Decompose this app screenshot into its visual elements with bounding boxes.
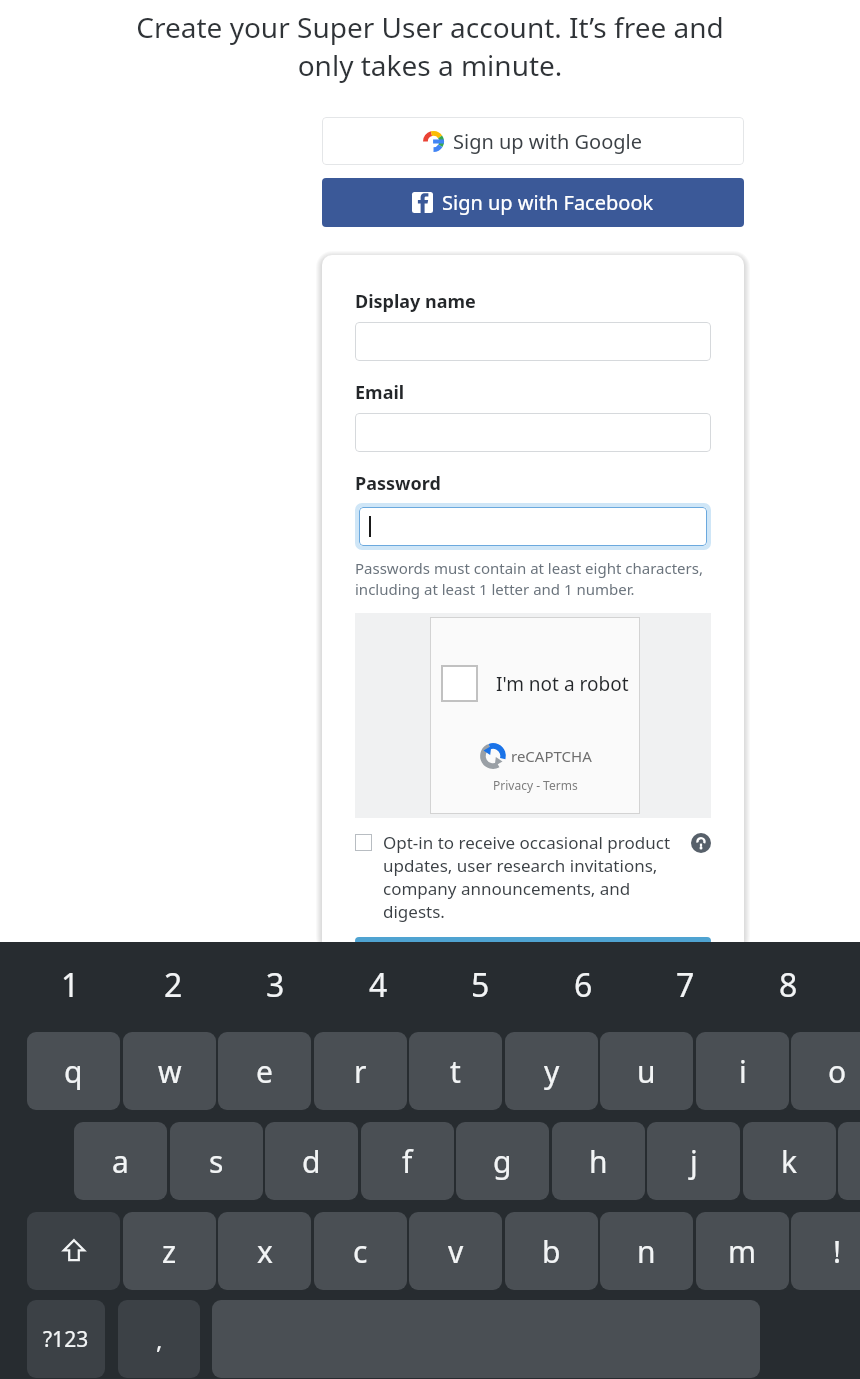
staticText: s [209, 1141, 224, 1182]
button[interactable]: j [647, 1122, 740, 1200]
staticText: v [448, 1231, 464, 1272]
button[interactable]: t [409, 1032, 502, 1110]
staticText: i [739, 1051, 747, 1092]
staticText: z [162, 1231, 177, 1272]
button[interactable]: v [409, 1212, 502, 1290]
button[interactable]: 5 [434, 954, 526, 1016]
staticText: h [589, 1141, 608, 1182]
button[interactable]: y [505, 1032, 598, 1110]
button[interactable]: u [600, 1032, 693, 1110]
button[interactable]: 1 [24, 954, 116, 1016]
staticText: ?123 [43, 1325, 89, 1354]
button[interactable]: 2 [127, 954, 219, 1016]
button[interactable]: g [456, 1122, 549, 1200]
button[interactable]: b [505, 1212, 598, 1290]
button[interactable]: Sign up with Google [322, 117, 744, 165]
staticText: Create your Super User account. It’s fre… [136, 8, 724, 84]
button[interactable]: k [743, 1122, 836, 1200]
staticText: 4 [369, 963, 388, 1007]
button[interactable]: I'm not a robot [430, 617, 640, 814]
staticText: d [302, 1141, 321, 1182]
staticText: Email [355, 380, 405, 405]
button[interactable]: n [600, 1212, 693, 1290]
staticText: I'm not a robot [496, 671, 629, 697]
staticText: 8 [779, 963, 798, 1007]
staticText: Sign up with Google [453, 128, 643, 155]
button[interactable]: z [123, 1212, 216, 1290]
staticText: x [257, 1231, 273, 1272]
button[interactable] [355, 413, 711, 452]
staticText: o [828, 1051, 847, 1092]
button[interactable]: d [265, 1122, 358, 1200]
staticText: , [156, 1323, 163, 1356]
button[interactable]: ! [791, 1212, 860, 1290]
button[interactable]: Sign up with Facebook [322, 178, 744, 227]
button[interactable]: 6 [537, 954, 629, 1016]
staticText: b [542, 1231, 561, 1272]
button[interactable]: f [361, 1122, 454, 1200]
staticText: e [256, 1051, 273, 1092]
staticText: m [728, 1231, 757, 1272]
button[interactable] [355, 834, 372, 851]
staticText: w [158, 1051, 182, 1092]
button[interactable]: , [118, 1300, 200, 1378]
button[interactable]: ?123 [27, 1300, 105, 1378]
button[interactable]: q [27, 1032, 120, 1110]
button[interactable]: Shift [27, 1212, 120, 1290]
staticText: Passwords must contain at least eight ch… [355, 558, 703, 600]
staticText: u [637, 1051, 656, 1092]
staticText: 2 [164, 963, 183, 1007]
button[interactable]: i [696, 1032, 789, 1110]
staticText: y [544, 1051, 560, 1092]
button[interactable]: a [74, 1122, 167, 1200]
button[interactable]: 8 [742, 954, 834, 1016]
button[interactable]: l [838, 1122, 860, 1200]
staticText: Display name [355, 289, 476, 314]
button[interactable]: 7 [639, 954, 731, 1016]
staticText: 7 [676, 963, 695, 1007]
staticText: r [354, 1051, 367, 1092]
button[interactable]: r [314, 1032, 407, 1110]
button[interactable]: s [170, 1122, 263, 1200]
button[interactable]: m [696, 1212, 789, 1290]
staticText: Sign up with Facebook [442, 189, 654, 216]
staticText: 6 [574, 963, 593, 1007]
staticText: t [450, 1051, 461, 1092]
button[interactable] [355, 937, 711, 945]
staticText: q [64, 1051, 83, 1092]
button[interactable]: w [123, 1032, 216, 1110]
staticText: Password [355, 471, 441, 496]
staticText: j [690, 1141, 698, 1182]
button[interactable]: h [552, 1122, 645, 1200]
button[interactable]: c [314, 1212, 407, 1290]
staticText: k [781, 1141, 798, 1182]
staticText: g [493, 1141, 512, 1182]
staticText: a [112, 1141, 129, 1182]
button[interactable]: Help about opt-in [691, 833, 711, 853]
button[interactable] [359, 507, 707, 546]
button[interactable]: e [218, 1032, 311, 1110]
button[interactable] [355, 322, 711, 361]
staticText: Opt-in to receive occasional product upd… [383, 831, 685, 923]
button[interactable]: x [218, 1212, 311, 1290]
staticText: f [402, 1141, 413, 1182]
staticText: n [637, 1231, 656, 1272]
staticText: Privacy - Terms [493, 777, 578, 793]
button[interactable]: 4 [332, 954, 424, 1016]
staticText: reCAPTCHA [511, 746, 592, 766]
button[interactable]: 3 [229, 954, 321, 1016]
staticText: 3 [266, 963, 285, 1007]
button[interactable]: o [791, 1032, 860, 1110]
staticText: c [353, 1231, 368, 1272]
staticText: 5 [471, 963, 490, 1007]
staticText: 1 [61, 963, 80, 1007]
staticText: ! [833, 1231, 842, 1272]
